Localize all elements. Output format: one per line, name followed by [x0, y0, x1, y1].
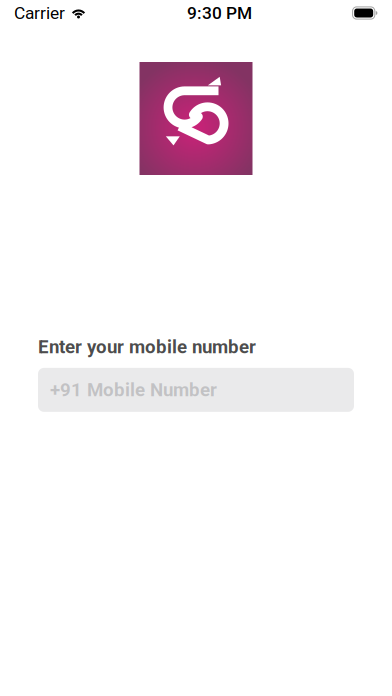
staticText: 9:30 PM: [187, 3, 252, 23]
staticText: Carrier: [14, 3, 65, 23]
button[interactable]: +91 Mobile Number: [38, 368, 354, 412]
staticText: Enter your mobile number: [38, 336, 256, 358]
staticText: +91 Mobile Number: [50, 379, 217, 401]
